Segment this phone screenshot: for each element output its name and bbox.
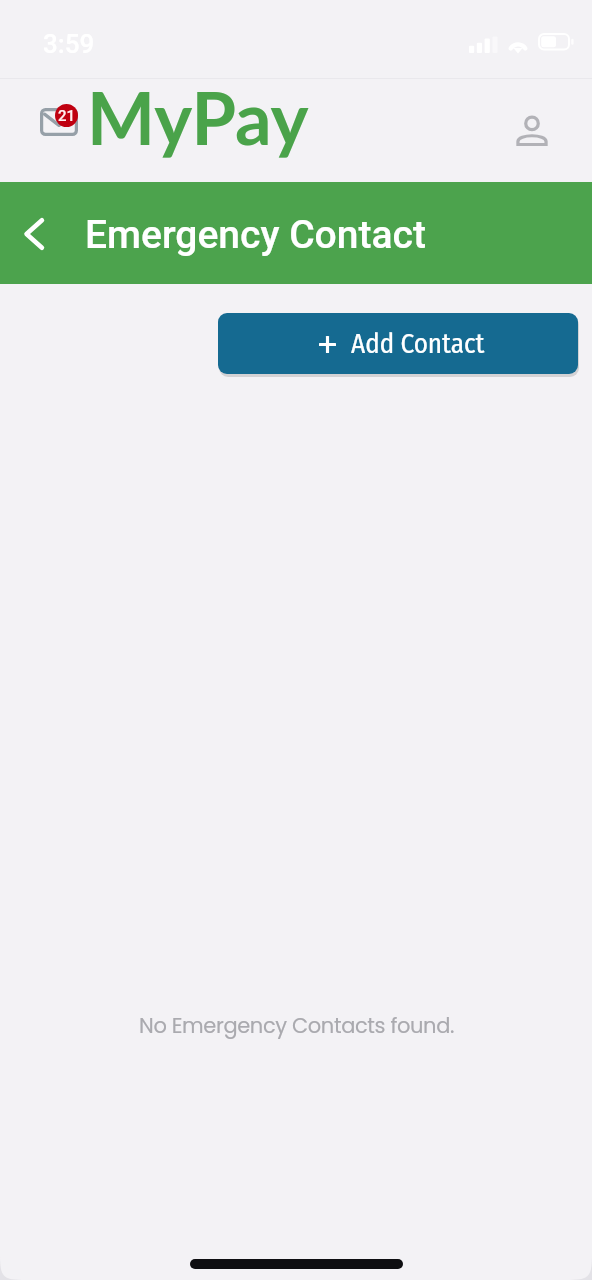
button[interactable]: Profile <box>506 105 558 157</box>
button[interactable]: Add Contact <box>218 313 578 374</box>
button[interactable]: Back <box>10 208 62 260</box>
staticText: 21 <box>58 107 76 125</box>
staticText: Emergency Contact <box>85 212 427 258</box>
staticText: Add Contact <box>351 328 485 360</box>
staticText: No Emergency Contacts found. <box>139 1011 454 1040</box>
button[interactable]: Messages, 21 unread <box>34 98 84 140</box>
staticText: MyPay <box>87 74 309 160</box>
staticText: 3:59 <box>43 29 95 59</box>
